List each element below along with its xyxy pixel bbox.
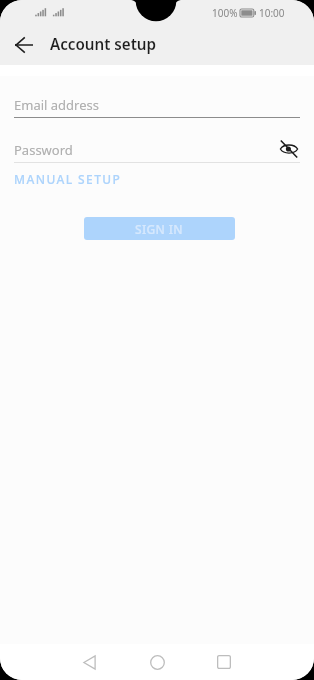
button[interactable]: Recent apps [202,644,246,680]
button[interactable]: Show password [277,137,301,161]
staticText: 10:00 [259,6,285,20]
button[interactable]: Back [67,644,111,680]
button[interactable]: SIGN IN [84,217,235,240]
staticText: 100% [212,6,238,20]
staticText: MANUAL SETUP [14,171,122,187]
button[interactable]: MANUAL SETUP [14,171,122,187]
staticText: Email address [14,96,99,114]
staticText: Account setup [50,34,157,55]
button[interactable]: Navigate up [5,25,43,64]
staticText: Password [14,141,73,159]
button[interactable]: Home [135,644,179,680]
staticText: SIGN IN [135,221,184,237]
